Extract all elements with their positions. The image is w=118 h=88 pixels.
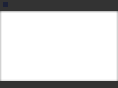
button[interactable]: Content (0, 11, 118, 81)
